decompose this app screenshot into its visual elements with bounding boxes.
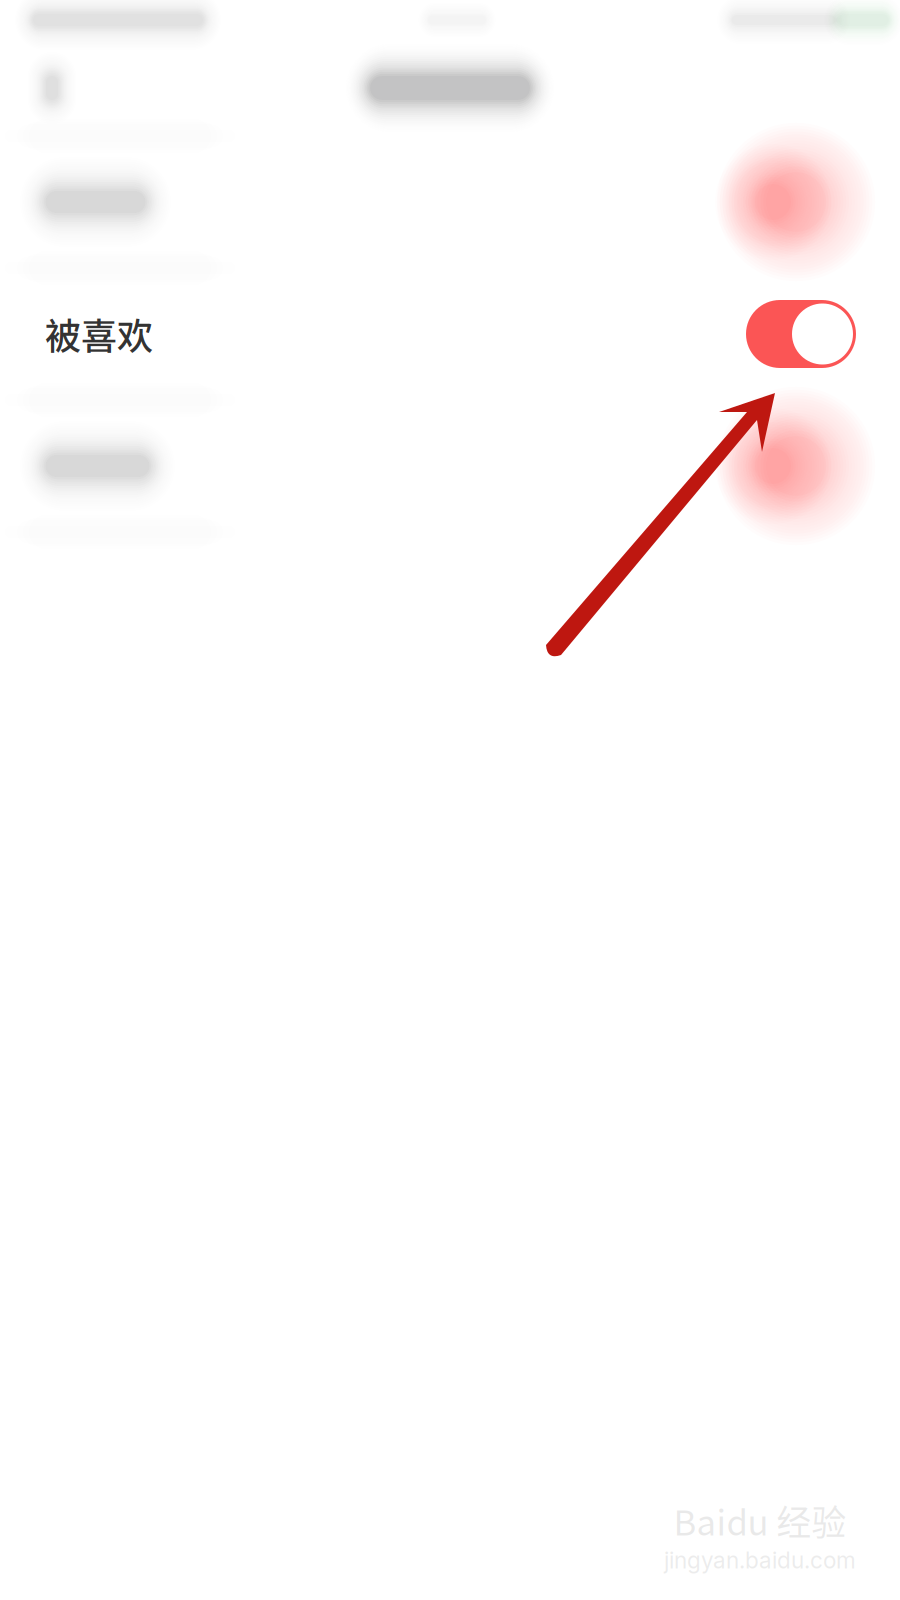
button[interactable]: Back [0, 43, 104, 133]
staticText: 被喜欢 [45, 308, 153, 360]
button[interactable] [0, 136, 900, 268]
button[interactable]: 被喜欢 [0, 268, 900, 400]
button[interactable] [0, 400, 900, 532]
staticText: Baidu 经验 [673, 1495, 846, 1546]
staticText: jingyan.baidu.com [664, 1547, 856, 1574]
